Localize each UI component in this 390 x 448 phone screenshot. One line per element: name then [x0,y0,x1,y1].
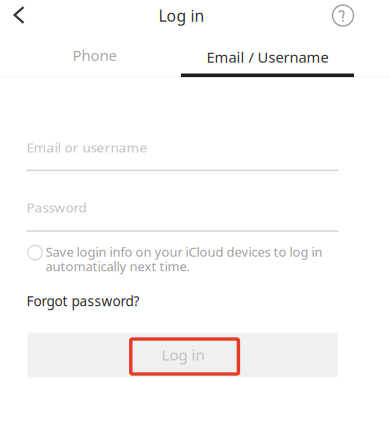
staticText: Phone [72,45,116,65]
staticText: Log in [158,5,204,26]
button[interactable]: Log in [28,332,338,377]
staticText: Email / Username [206,47,328,67]
button[interactable]: Password [26,192,338,232]
button[interactable]: Save login info on your iCloud devices t… [24,243,324,276]
button[interactable]: Email / Username [181,36,354,77]
staticText: Password [26,198,86,216]
staticText: automatically next time. [45,257,189,275]
staticText: Save login info on your iCloud devices t… [45,243,322,260]
staticText: Forgot password? [26,292,139,310]
button[interactable]: Forgot password? [26,292,139,310]
staticText: Email or username [26,138,147,156]
button[interactable]: Back [1,0,37,30]
button[interactable]: Phone [8,36,181,77]
staticText: Log in [161,345,204,365]
button[interactable]: Help [330,3,356,28]
button[interactable]: Email or username [26,132,338,171]
